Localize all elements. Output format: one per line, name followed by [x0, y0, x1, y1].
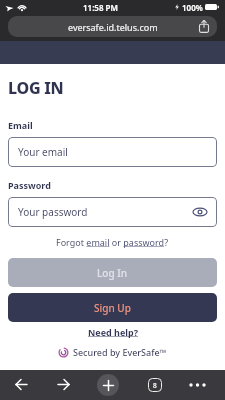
button[interactable]: Forgot email or password? [56, 236, 169, 248]
button[interactable] [193, 207, 207, 217]
button[interactable] [97, 374, 119, 396]
staticText: eversafe.id.telus.com [68, 21, 158, 33]
staticText: Secured by EverSafe™ [73, 346, 167, 358]
button[interactable]: Sign Up [8, 293, 217, 322]
staticText: Log In [97, 266, 128, 280]
button[interactable]: 8 [148, 378, 162, 392]
staticText: 11:58 PM [83, 2, 118, 13]
staticText: Email [8, 119, 33, 131]
staticText: Password [8, 179, 51, 191]
button[interactable]: Log In [8, 258, 217, 287]
staticText: 8 [153, 381, 157, 390]
staticText: LOG IN [8, 77, 64, 99]
staticText: 100% [182, 2, 203, 13]
button[interactable]: Need help? [88, 326, 138, 338]
button[interactable]: eversafe.id.telus.com [8, 16, 217, 37]
staticText: Your email [18, 145, 68, 159]
staticText: Sign Up [94, 301, 131, 315]
button[interactable] [188, 382, 206, 388]
button[interactable]: Your email [8, 137, 217, 167]
button[interactable] [57, 379, 70, 390]
button[interactable]: Your password [8, 197, 217, 227]
staticText: Your password [18, 205, 88, 219]
button[interactable] [15, 379, 28, 390]
